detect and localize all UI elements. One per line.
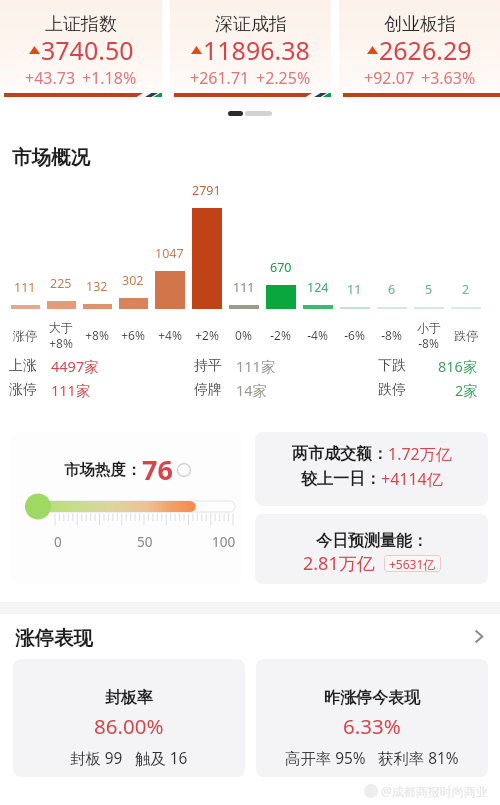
- button[interactable]: 昨涨停今表现: [256, 659, 488, 777]
- staticText: 111: [14, 279, 36, 296]
- staticText: 较上一日：: [301, 469, 381, 489]
- staticText: +2%: [195, 327, 219, 343]
- staticText: 涨停: [13, 328, 37, 343]
- staticText: 1.72万亿: [388, 443, 452, 465]
- staticText: 大于: [49, 320, 73, 335]
- button[interactable]: 封板率: [13, 659, 245, 777]
- button[interactable]: 市场热度：: [12, 432, 242, 584]
- staticText: 6.33%: [343, 712, 401, 740]
- staticText: 昨涨停今表现: [324, 688, 420, 708]
- staticText: +8%: [49, 335, 73, 351]
- button[interactable]: 查看更多: [466, 626, 490, 647]
- staticText: 今日预测量能：: [316, 531, 428, 551]
- staticText: 小于: [417, 320, 441, 335]
- staticText: +43.73: [25, 67, 76, 89]
- staticText: 111家: [236, 356, 276, 375]
- staticText: 302: [122, 272, 144, 289]
- staticText: -2%: [270, 327, 291, 343]
- staticText: 封板率: [105, 688, 153, 708]
- staticText: +261.71: [190, 67, 250, 89]
- staticText: 50: [137, 533, 153, 551]
- staticText: 高开率 95%: [285, 748, 366, 769]
- staticText: 111家: [51, 380, 91, 399]
- button[interactable]: 上证指数: [0, 0, 162, 103]
- staticText: +8%: [85, 327, 109, 343]
- staticText: -8%: [381, 327, 402, 343]
- staticText: 2791: [192, 182, 221, 199]
- button[interactable]: 创业板指: [339, 0, 500, 103]
- staticText: 市场热度：: [64, 460, 142, 480]
- staticText: 获利率 81%: [378, 748, 459, 769]
- staticText: 下跌: [378, 357, 406, 375]
- staticText: 4497家: [51, 356, 99, 375]
- staticText: 76: [142, 451, 173, 488]
- staticText: 2626.29: [379, 33, 472, 67]
- staticText: 封板 99: [70, 748, 123, 769]
- staticText: 跌停: [378, 381, 406, 399]
- staticText: 跌停: [454, 328, 478, 343]
- staticText: 5: [425, 281, 433, 298]
- staticText: 225: [50, 275, 72, 292]
- button[interactable]: 两市成交额：: [255, 432, 488, 506]
- staticText: +92.07: [364, 67, 415, 89]
- staticText: 2: [462, 281, 470, 298]
- staticText: 创业板指: [384, 13, 456, 33]
- staticText: 触及 16: [135, 748, 188, 769]
- button[interactable]: 深证成指: [170, 0, 331, 103]
- staticText: 持平: [194, 357, 222, 375]
- button[interactable]: 今日预测量能：: [255, 514, 488, 584]
- staticText: +1.18%: [82, 67, 137, 89]
- staticText: 3740.50: [41, 33, 134, 67]
- staticText: 市场概况: [12, 145, 90, 170]
- staticText: 816家: [438, 356, 478, 375]
- staticText: 100: [212, 533, 236, 551]
- staticText: 11896.38: [203, 33, 310, 67]
- staticText: @成都商报时尚商业: [381, 783, 488, 799]
- staticText: -6%: [344, 327, 365, 343]
- staticText: 涨停表现: [15, 626, 93, 647]
- staticText: 涨停: [9, 381, 37, 399]
- staticText: 111: [233, 279, 255, 296]
- staticText: 深证成指: [215, 13, 287, 33]
- staticText: 上证指数: [45, 13, 117, 33]
- staticText: 0: [54, 533, 62, 551]
- staticText: 停牌: [194, 381, 222, 399]
- staticText: +2.25%: [256, 67, 311, 89]
- staticText: -8%: [418, 335, 439, 351]
- staticText: +4%: [158, 327, 182, 343]
- staticText: +4114亿: [381, 468, 443, 490]
- staticText: 14家: [236, 380, 268, 399]
- staticText: 2家: [455, 380, 478, 399]
- staticText: 132: [86, 278, 108, 295]
- staticText: 670: [270, 259, 292, 276]
- staticText: 2.81万亿: [303, 551, 375, 576]
- staticText: 0%: [235, 327, 252, 343]
- staticText: 1047: [155, 245, 184, 262]
- staticText: 11: [347, 281, 362, 298]
- staticText: -4%: [307, 327, 328, 343]
- staticText: 两市成交额：: [292, 444, 388, 464]
- staticText: 上涨: [9, 357, 37, 375]
- staticText: 6: [388, 281, 396, 298]
- staticText: +3.63%: [421, 67, 476, 89]
- staticText: +6%: [121, 327, 145, 343]
- staticText: 86.00%: [94, 712, 164, 740]
- staticText: 124: [307, 279, 329, 296]
- staticText: +5631亿: [389, 556, 436, 572]
